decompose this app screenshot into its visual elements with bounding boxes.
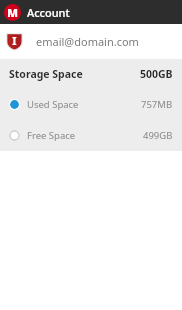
button[interactable]: Account security badge [0, 24, 182, 59]
staticText: M [7, 5, 18, 20]
staticText: Used Space [27, 98, 79, 111]
staticText: Free Space [27, 129, 76, 142]
staticText: 499GB [143, 129, 173, 142]
button[interactable]: Storage Space [0, 59, 182, 89]
staticText: email@domain.com [36, 34, 139, 49]
button[interactable]: App logo [0, 0, 182, 24]
staticText: 757MB [141, 98, 173, 111]
staticText: Account [27, 5, 70, 20]
button[interactable]: Used Space [0, 89, 182, 120]
staticText: 500GB [140, 67, 173, 81]
staticText: I [12, 33, 17, 48]
other: Account security badge [5, 32, 24, 51]
other: App logo [4, 4, 21, 21]
button[interactable]: Free Space [0, 120, 182, 151]
staticText: Storage Space [9, 67, 83, 81]
